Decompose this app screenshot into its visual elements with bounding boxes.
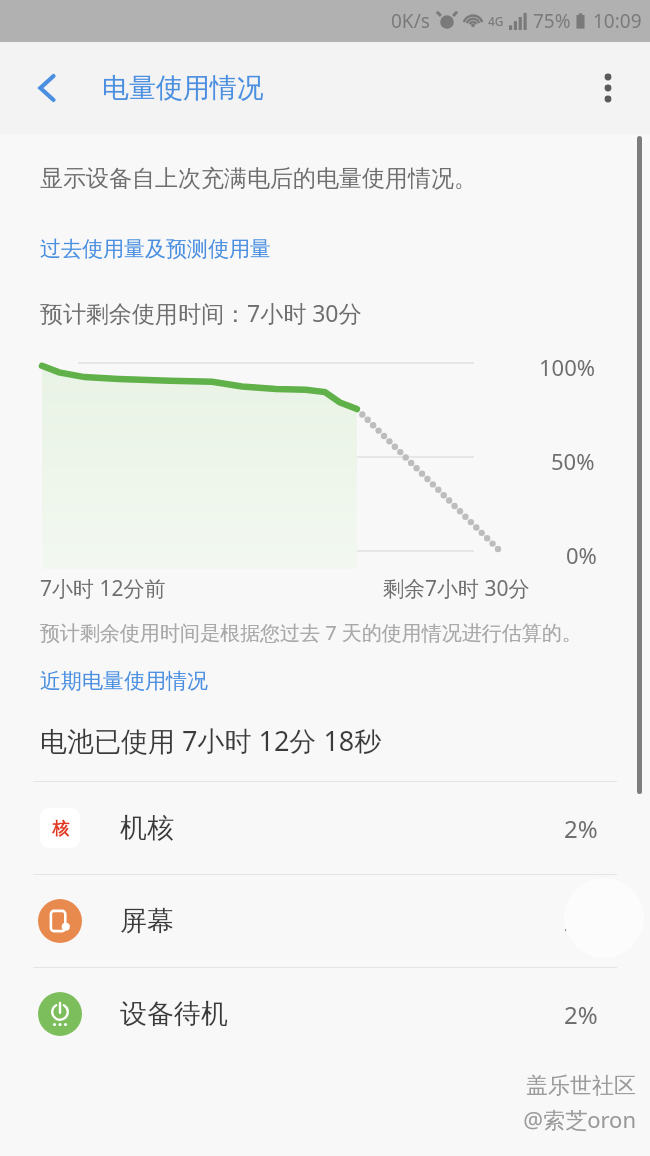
staticText: 电量使用情况 [102, 71, 264, 105]
staticText: 75% [533, 8, 571, 34]
staticText: 7小时 12分前 [40, 574, 166, 603]
button[interactable]: 屏幕 [0, 875, 650, 967]
staticText: 屏幕 [120, 904, 174, 938]
button[interactable]: Back [22, 62, 74, 114]
staticText: 电池已使用 7小时 12分 18秒 [40, 722, 382, 759]
staticText: 2% [564, 812, 598, 845]
staticText: 4G [488, 13, 504, 29]
staticText: 10:09 [593, 8, 642, 34]
staticText: 50% [551, 446, 595, 476]
staticText: 100% [539, 352, 596, 382]
staticText: 2% [564, 905, 598, 938]
staticText: 机核 [120, 811, 174, 845]
staticText: 盖乐世社区 [526, 1072, 636, 1100]
staticText: 2% [564, 998, 598, 1031]
staticText: 0K/s [391, 8, 430, 34]
staticText: 0% [566, 540, 597, 570]
staticText: 过去使用量及预测使用量 [40, 236, 271, 262]
staticText: 近期电量使用情况 [40, 668, 208, 694]
staticText: 设备待机 [120, 997, 228, 1031]
staticText: 预计剩余使用时间是根据您过去 7 天的使用情况进行估算的。 [40, 619, 582, 646]
staticText: @索芝oron [523, 1104, 636, 1134]
button[interactable]: 设备待机 [0, 968, 650, 1060]
staticText: 剩余7小时 30分 [383, 574, 530, 603]
staticText: 预计剩余使用时间：7小时 30分 [40, 297, 362, 328]
staticText: 显示设备自上次充满电后的电量使用情况。 [40, 164, 477, 193]
staticText: 核 [52, 818, 69, 839]
button[interactable]: 核 [0, 782, 650, 874]
button[interactable]: More options [582, 62, 634, 114]
